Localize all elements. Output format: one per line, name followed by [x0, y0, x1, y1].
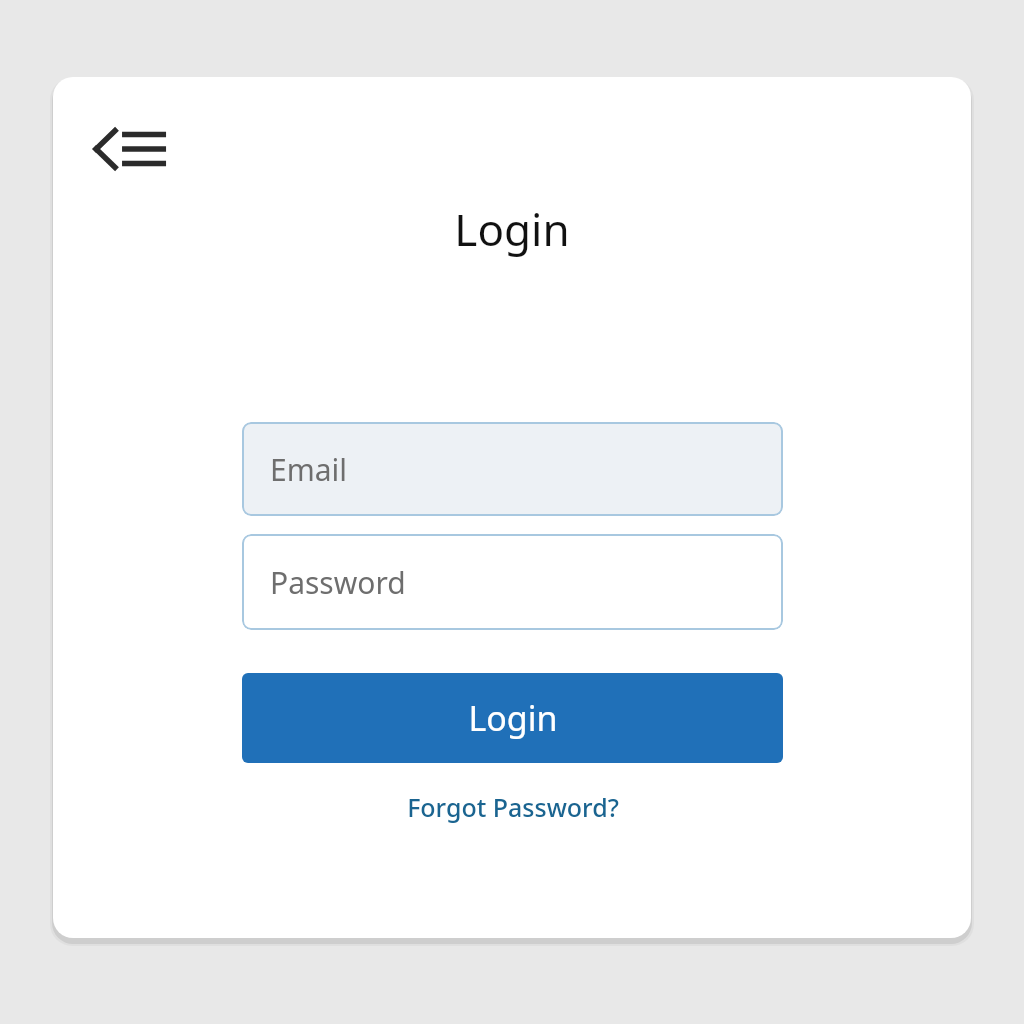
- button[interactable]: Back and menu: [86, 113, 172, 185]
- button[interactable]: Forgot Password?: [242, 781, 783, 833]
- button[interactable]: Login: [242, 673, 783, 763]
- staticText: Password: [270, 562, 406, 603]
- button[interactable]: Email: [242, 422, 783, 516]
- staticText: Email: [270, 449, 348, 490]
- staticText: Login: [53, 199, 971, 259]
- staticText: Login: [468, 695, 558, 741]
- button[interactable]: Password: [242, 534, 783, 630]
- staticText: Forgot Password?: [407, 790, 619, 824]
